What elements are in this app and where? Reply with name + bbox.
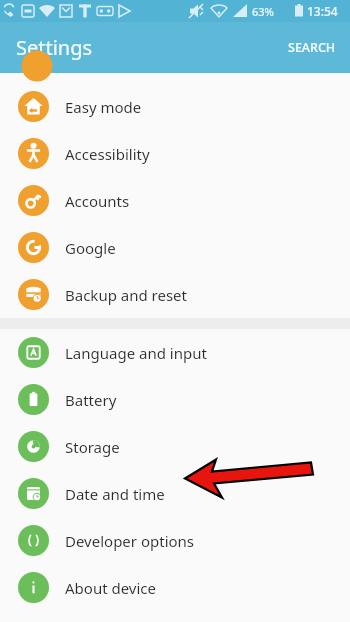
button[interactable]: Easy mode — [0, 83, 350, 130]
button[interactable]: Backup and reset — [0, 271, 350, 318]
staticText: Battery — [65, 390, 117, 410]
button[interactable]: Date and time — [0, 470, 350, 517]
staticText: Backup and reset — [65, 285, 187, 305]
staticText: Easy mode — [65, 97, 142, 117]
staticText: Developer options — [65, 531, 195, 551]
button[interactable]: Language and input — [0, 329, 350, 376]
button[interactable]: About device — [0, 564, 350, 611]
staticText: Date and time — [65, 484, 165, 504]
staticText: 13:54 — [307, 3, 338, 19]
button[interactable]: Accessibility — [0, 130, 350, 177]
button[interactable]: Accounts — [0, 177, 350, 224]
button[interactable]: Developer options — [0, 517, 350, 564]
button[interactable] — [0, 73, 350, 83]
button[interactable]: Storage — [0, 423, 350, 470]
staticText: About device — [65, 578, 157, 598]
staticText: Language and input — [65, 343, 207, 363]
staticText: SEARCH — [288, 39, 336, 56]
staticText: Settings — [16, 34, 93, 61]
staticText: Accounts — [65, 191, 130, 211]
button[interactable]: SEARCH — [274, 29, 350, 66]
staticText: 63% — [252, 4, 274, 19]
button[interactable]: Google — [0, 224, 350, 271]
staticText: Google — [65, 238, 116, 258]
staticText: Storage — [65, 437, 120, 457]
button[interactable]: Battery — [0, 376, 350, 423]
staticText: Accessibility — [65, 144, 150, 164]
